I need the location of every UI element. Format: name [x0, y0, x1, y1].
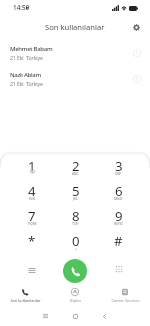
button[interactable]: Home [67, 308, 83, 324]
staticText: 3 [115, 157, 123, 175]
button[interactable]: 9 [97, 201, 140, 226]
staticText: 14:59 [13, 3, 30, 12]
staticText: Carrier Services [111, 298, 140, 303]
staticText: 5 [72, 182, 80, 200]
staticText: 4 [28, 182, 36, 200]
staticText: * [28, 232, 36, 250]
staticText: 9 [115, 207, 123, 225]
staticText: MNO [114, 196, 123, 201]
button[interactable]: Call details [130, 46, 144, 60]
staticText: TUV [72, 221, 79, 226]
button[interactable]: Mehmet Babam [0, 40, 150, 66]
staticText: 6 [115, 182, 123, 200]
button[interactable]: More options [10, 253, 54, 288]
staticText: 0 [72, 232, 80, 250]
staticText: JKL [73, 196, 78, 201]
staticText: PQRS [28, 221, 37, 226]
button[interactable]: 3 [97, 151, 140, 176]
button[interactable]: Settings [129, 20, 143, 34]
button[interactable]: 8 [54, 201, 97, 226]
staticText: 2 [72, 157, 80, 175]
staticText: WXYZ [114, 221, 123, 226]
button[interactable]: 0 [54, 226, 97, 251]
button[interactable]: Call [63, 259, 87, 283]
button[interactable]: Son kullanılanlar [0, 285, 50, 307]
button[interactable]: * [10, 226, 54, 251]
staticText: 8 [72, 207, 80, 225]
button[interactable]: 4 [10, 176, 54, 201]
staticText: # [114, 232, 123, 250]
staticText: Mehmet Babam [10, 45, 53, 53]
staticText: DEF [115, 171, 122, 176]
button[interactable]: Call details [130, 72, 144, 86]
staticText: GHI [29, 196, 36, 201]
staticText: Son kullanılanlar [45, 22, 105, 32]
button[interactable]: Kişiler [50, 285, 100, 307]
button[interactable]: Recent apps [37, 308, 53, 324]
staticText: + [75, 246, 77, 251]
staticText: 21 Eki Türkiye [10, 54, 43, 61]
button[interactable]: Hide keypad [97, 253, 140, 288]
button[interactable]: 2 [54, 151, 97, 176]
button[interactable]: 7 [10, 201, 54, 226]
button[interactable]: Back [96, 308, 112, 324]
staticText: ABC [72, 171, 79, 176]
staticText: 1 [28, 157, 36, 175]
staticText: 7 [28, 207, 36, 225]
staticText: Son kullanılanlar [10, 298, 41, 303]
staticText: Nazlı Ablam [10, 71, 41, 79]
staticText: 21 Eki Türkiye [10, 80, 43, 87]
button[interactable]: 5 [54, 176, 97, 201]
button[interactable]: 6 [97, 176, 140, 201]
staticText: Kişiler [70, 298, 81, 303]
button[interactable]: Nazlı Ablam [0, 66, 150, 92]
button[interactable]: 1 [10, 151, 54, 176]
button[interactable]: Carrier Services [100, 285, 150, 307]
button[interactable]: # [97, 226, 140, 251]
